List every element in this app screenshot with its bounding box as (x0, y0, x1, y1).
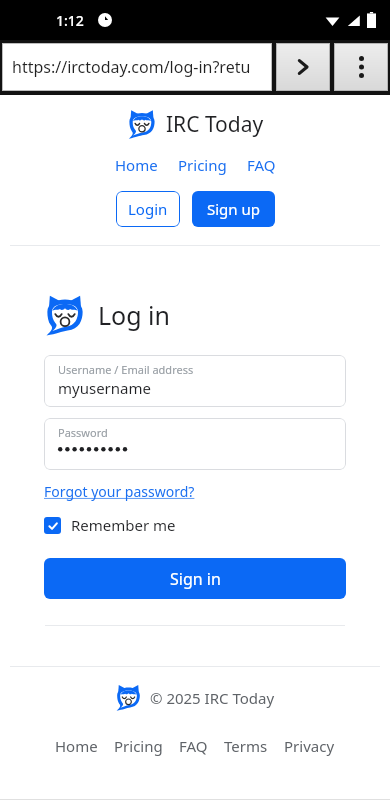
staticText: FAQ (179, 736, 208, 756)
button[interactable]: FAQ (177, 734, 210, 758)
button[interactable]: Sign up (192, 191, 275, 227)
button[interactable]: Password (44, 418, 346, 470)
button[interactable]: Pricing (175, 153, 230, 177)
staticText: Password (58, 425, 108, 440)
button[interactable]: Terms (222, 734, 270, 758)
button[interactable]: Username / Email address (44, 355, 346, 407)
button[interactable]: Login (116, 191, 180, 227)
staticText: Sign up (207, 199, 260, 219)
staticText: myusername (58, 378, 151, 398)
button[interactable]: Home (53, 734, 100, 758)
button[interactable]: Go (276, 43, 330, 91)
button[interactable]: Home (112, 153, 161, 177)
staticText: Terms (224, 736, 268, 756)
button[interactable]: FAQ (244, 153, 279, 177)
staticText: FAQ (247, 155, 276, 175)
staticText: 1:12 (56, 11, 84, 30)
button[interactable]: More options (334, 43, 388, 91)
staticText: Home (55, 736, 98, 756)
staticText: Forgot your password? (44, 482, 195, 501)
button[interactable]: IRC Today (0, 109, 390, 139)
staticText: Pricing (114, 736, 163, 756)
button[interactable]: Privacy (282, 734, 337, 758)
staticText: Privacy (284, 736, 335, 756)
staticText: Log in (98, 298, 171, 332)
staticText: Home (115, 155, 158, 175)
staticText: IRC Today (166, 110, 264, 139)
button[interactable]: Remember me (44, 515, 176, 535)
button[interactable]: Sign in (44, 558, 346, 599)
staticText: Pricing (178, 155, 227, 175)
button[interactable]: Pricing (112, 734, 165, 758)
staticText: Username / Email address (58, 362, 194, 377)
button[interactable]: https://irctoday.com/log-in?retu (2, 43, 272, 91)
staticText: https://irctoday.com/log-in?retu (12, 56, 251, 78)
staticText: Sign in (170, 568, 221, 590)
staticText: Remember me (71, 515, 176, 535)
staticText: © 2025 IRC Today (150, 688, 275, 708)
button[interactable]: Forgot your password? (44, 482, 195, 501)
button[interactable]: © 2025 IRC Today (0, 684, 390, 711)
staticText: Login (128, 199, 168, 219)
